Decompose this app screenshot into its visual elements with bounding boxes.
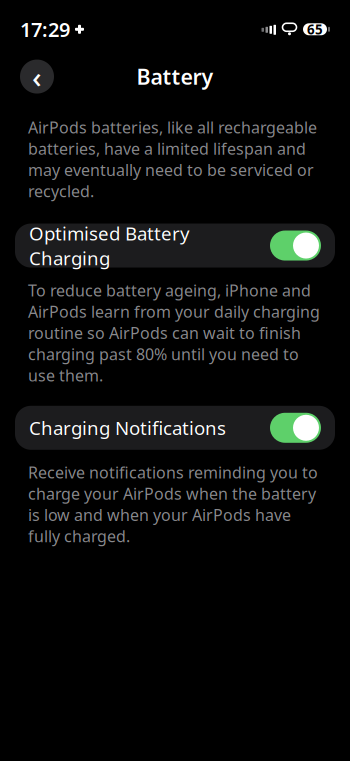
button[interactable]: Optimised Battery Charging [15, 224, 335, 268]
staticText: To reduce battery ageing, iPhone and Air… [28, 280, 320, 386]
staticText: Charging Notifications [29, 415, 226, 440]
button[interactable]: Back [20, 57, 54, 96]
staticText: Battery [136, 62, 213, 91]
staticText: Receive notifications reminding you to c… [28, 462, 318, 547]
staticText: Optimised Battery Charging [29, 221, 190, 270]
staticText: 17:29 [20, 16, 70, 43]
staticText: ‹ [32, 57, 42, 96]
staticText: AirPods batteries, like all rechargeable… [28, 117, 317, 202]
staticText: 65 [307, 20, 323, 38]
button[interactable]: Charging Notifications [15, 406, 335, 450]
